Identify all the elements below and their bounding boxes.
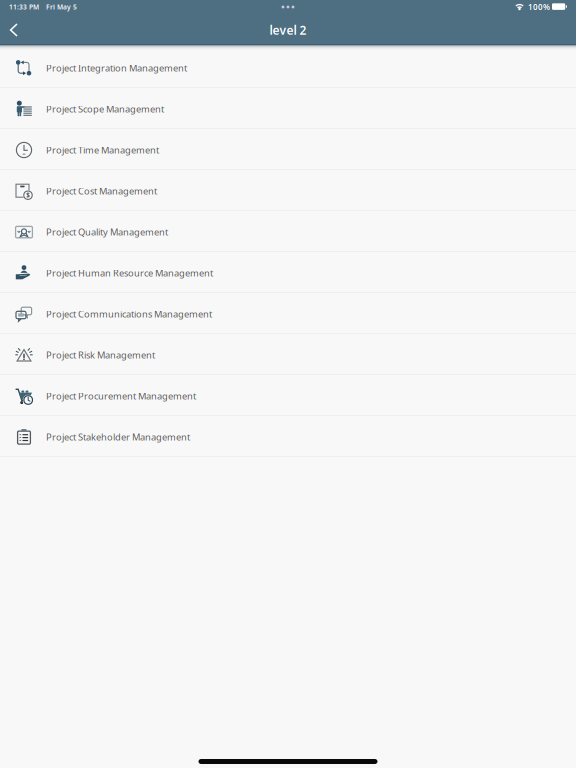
staticText: Project Procurement Management xyxy=(46,390,196,402)
button[interactable]: Project Integration Management xyxy=(0,47,576,88)
staticText: Project Integration Management xyxy=(46,62,187,74)
staticText: Project Risk Management xyxy=(46,349,155,361)
button[interactable]: Project Time Management xyxy=(0,129,576,170)
button[interactable]: Project Human Resource Management xyxy=(0,252,576,293)
staticText: Project Human Resource Management xyxy=(46,267,213,279)
staticText: Project Scope Management xyxy=(46,103,164,115)
staticText: Project Time Management xyxy=(46,144,159,156)
staticText: Project Communications Management xyxy=(46,308,212,320)
button[interactable]: Project Quality Management xyxy=(0,211,576,252)
button[interactable]: Project Procurement Management xyxy=(0,375,576,416)
button[interactable]: Project Communications Management xyxy=(0,293,576,334)
button[interactable]: Back xyxy=(0,15,33,45)
staticText: 11:33 PM xyxy=(9,3,39,11)
staticText: level 2 xyxy=(269,22,306,38)
staticText: Project Stakeholder Management xyxy=(46,431,190,443)
staticText: Project Quality Management xyxy=(46,226,168,238)
staticText: Project Cost Management xyxy=(46,185,157,197)
staticText: Fri May 5 xyxy=(46,3,77,11)
button[interactable]: Project Stakeholder Management xyxy=(0,416,576,457)
button[interactable]: Project Cost Management xyxy=(0,170,576,211)
button[interactable]: Project Scope Management xyxy=(0,88,576,129)
staticText: 100% xyxy=(528,2,550,12)
button[interactable]: Project Risk Management xyxy=(0,334,576,375)
